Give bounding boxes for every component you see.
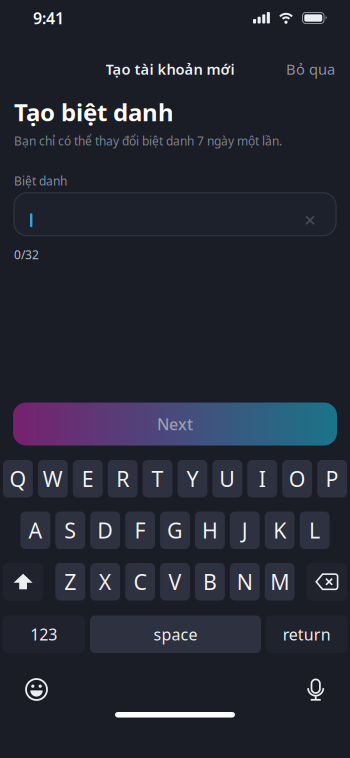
staticText: H [202,516,218,544]
staticText: Q [9,465,26,493]
staticText: E [82,465,94,493]
button[interactable]: Y [177,460,207,497]
button[interactable]: M [265,563,295,600]
staticText: G [167,516,183,544]
button[interactable]: O [282,460,312,497]
button[interactable]: P [317,460,347,497]
button[interactable]: C [125,563,155,600]
staticText: W [43,465,63,493]
button[interactable]: Q [3,460,33,497]
staticText: O [289,465,306,493]
button[interactable]: J [230,511,260,549]
staticText: Z [64,568,76,596]
staticText: Tạo tài khoản mới [105,59,234,79]
staticText: 0/32 [14,247,39,263]
staticText: P [325,465,338,493]
button[interactable]: Z [55,563,85,600]
staticText: X [99,568,112,596]
staticText: M [270,568,289,596]
button[interactable] [307,563,347,600]
staticText: 9:41 [33,7,64,29]
staticText: space [153,624,197,645]
staticText: T [151,465,163,493]
button[interactable] [25,678,48,701]
button[interactable]: V [160,563,190,600]
button[interactable]: X [90,563,120,600]
button[interactable]: L [300,511,329,549]
button[interactable]: K [265,511,295,549]
staticText: L [309,516,320,544]
staticText: S [64,516,76,544]
button[interactable]: A [20,511,50,549]
button[interactable]: I [247,460,277,497]
button[interactable]: H [195,511,225,549]
button[interactable] [0,193,350,236]
button[interactable]: N [230,563,260,600]
staticText: V [168,568,181,596]
button[interactable] [305,678,326,700]
staticText: F [135,516,146,544]
button[interactable]: G [160,511,190,549]
button[interactable]: U [212,460,242,497]
button[interactable]: 123 [2,615,85,653]
staticText: I [259,465,266,493]
staticText: J [242,516,248,544]
button[interactable]: T [143,460,172,497]
button[interactable]: space [90,615,261,653]
staticText: 123 [30,624,57,645]
button[interactable]: Bỏ qua [286,59,335,79]
button[interactable]: W [38,460,68,497]
staticText: Next [157,413,193,435]
button[interactable]: F [125,511,155,549]
button[interactable]: S [55,511,85,549]
button[interactable]: D [90,511,120,549]
staticText: D [97,516,113,544]
staticText: Tạo biệt danh [14,96,174,128]
button[interactable]: Next [0,402,350,445]
button[interactable] [3,563,43,600]
button[interactable]: B [195,563,225,600]
staticText: return [283,624,331,645]
staticText: A [28,516,42,544]
button[interactable]: return [266,615,347,653]
button[interactable]: E [73,460,103,497]
staticText: K [273,516,286,544]
staticText: Biệt danh [14,173,67,189]
staticText: B [203,568,217,596]
staticText: Bỏ qua [286,59,335,79]
staticText: U [219,465,235,493]
button[interactable]: R [108,460,138,497]
staticText: Bạn chỉ có thể thay đổi biệt danh 7 ngày… [14,133,282,149]
staticText: R [116,465,129,493]
staticText: C [134,568,147,596]
staticText: Y [186,465,198,493]
staticText: N [237,568,253,596]
